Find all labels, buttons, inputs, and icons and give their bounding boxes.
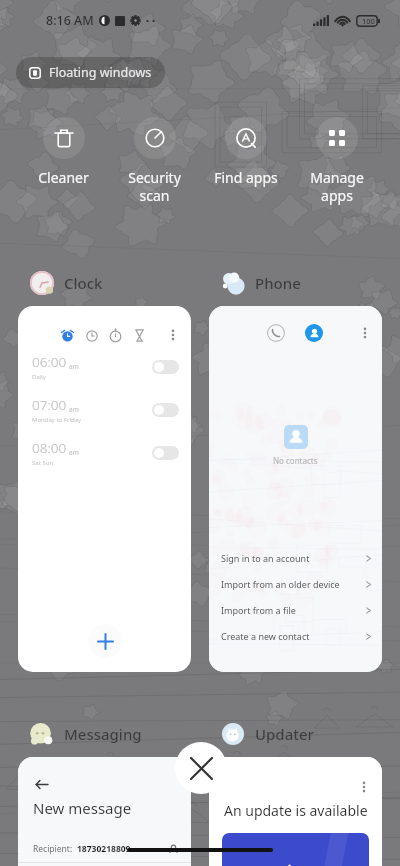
staticText: Import from an older device [221,578,340,590]
staticText: Floating windows [49,64,152,81]
button[interactable]: Back [18,757,191,866]
staticText: 06:00 [32,353,67,371]
button[interactable]: Cleaner [18,117,109,187]
button[interactable]: Toggle alarm [152,446,179,460]
staticText: No contacts [273,455,318,466]
staticText: Clock [64,273,103,293]
button[interactable]: Stopwatch [108,328,123,343]
staticText: Messaging [64,724,142,744]
button[interactable]: Toggle alarm [152,360,179,374]
staticText: 18730218809 [77,843,131,855]
button[interactable]: Alarm [18,306,191,672]
button[interactable]: More options [356,779,372,795]
staticText: 08:00 [32,439,67,457]
button[interactable]: Back [31,774,51,794]
staticText: Manage apps [310,168,364,205]
button[interactable]: Add alarm [88,624,122,658]
staticText: An update is available [224,801,368,820]
staticText: Create a new contact [221,630,310,642]
staticText: 07:00 [32,396,67,414]
button[interactable]: More options [357,325,373,341]
button[interactable]: Security scan [109,117,200,205]
button[interactable]: Manage apps [291,117,382,205]
button[interactable]: Timer [132,328,147,343]
button[interactable]: More options [209,757,382,866]
button[interactable]: Import from a file [209,597,382,623]
button[interactable]: Close all [175,742,227,794]
staticText: New message [33,798,132,818]
staticText: Updater [255,724,314,744]
staticText: am [69,405,79,414]
staticText: am [69,448,79,457]
button[interactable]: Clock [84,328,99,343]
button[interactable]: Contacts [305,324,323,342]
button[interactable]: More options [165,327,181,343]
staticText: Security scan [128,168,181,205]
staticText: Sat Sun [32,459,54,467]
staticText: Daily [32,373,46,381]
button[interactable]: Dialer [267,324,285,342]
button[interactable]: Dialer [209,306,382,672]
button[interactable]: Alarm [60,328,75,343]
staticText: Import from a file [221,604,296,616]
button[interactable]: Toggle alarm [152,403,179,417]
staticText: Monday to Friday [32,416,82,424]
staticText: am [69,362,79,371]
staticText: Recipient: [33,843,73,855]
staticText: Sign in to an account [221,552,310,564]
staticText: 8:16 AM [46,12,94,29]
staticText: Phone [255,273,301,293]
button[interactable]: Import from an older device [209,571,382,597]
button[interactable]: Floating windows [16,57,165,88]
staticText: Cleaner [38,168,89,187]
staticText: 100 [362,16,375,26]
button[interactable]: Create a new contact [209,623,382,649]
button[interactable]: Find apps [200,117,291,187]
button[interactable]: Sign in to an account [209,545,382,571]
staticText: Find apps [214,168,278,187]
